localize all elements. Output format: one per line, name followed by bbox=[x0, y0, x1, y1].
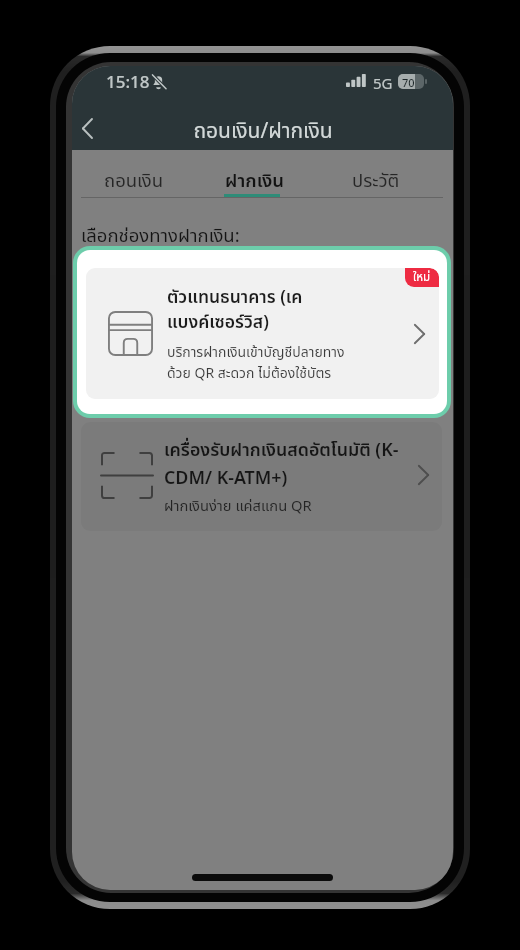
button[interactable]: ฝากเงิน bbox=[194, 150, 315, 197]
staticText: บริการฝากเงินเข้าบัญชีปลายทาง ด้วย QR สะ… bbox=[167, 342, 345, 384]
staticText: 15:18 bbox=[106, 70, 150, 93]
staticText: 5G bbox=[373, 73, 393, 93]
staticText: ใหม่ bbox=[413, 269, 431, 286]
staticText: ประวัติ bbox=[352, 167, 400, 195]
staticText: ถอนเงิน/ฝากเงิน bbox=[193, 116, 333, 148]
staticText: ตัวแทนธนาคาร (เค แบงค์เซอร์วิส) bbox=[167, 284, 303, 336]
button[interactable]: ประวัติ bbox=[315, 150, 436, 197]
button[interactable]: Back bbox=[72, 107, 102, 149]
staticText: 70 bbox=[402, 75, 415, 90]
button[interactable]: ตัวแทนธนาคาร (เค แบงค์เซอร์วิส) bbox=[86, 268, 439, 399]
staticText: เลือกช่องทางฝากเงิน: bbox=[81, 222, 240, 250]
staticText: ถอนเงิน bbox=[104, 167, 164, 195]
staticText: ฝากเงิน bbox=[225, 167, 285, 195]
staticText: เครื่องรับฝากเงินสดอัตโนมัติ (K- CDM/ K-… bbox=[164, 437, 399, 492]
staticText: ฝากเงินง่าย แค่สแกน QR bbox=[164, 495, 312, 517]
button[interactable]: ถอนเงิน bbox=[74, 150, 194, 197]
button[interactable]: เครื่องรับฝากเงินสดอัตโนมัติ (K- CDM/ K-… bbox=[81, 422, 442, 531]
